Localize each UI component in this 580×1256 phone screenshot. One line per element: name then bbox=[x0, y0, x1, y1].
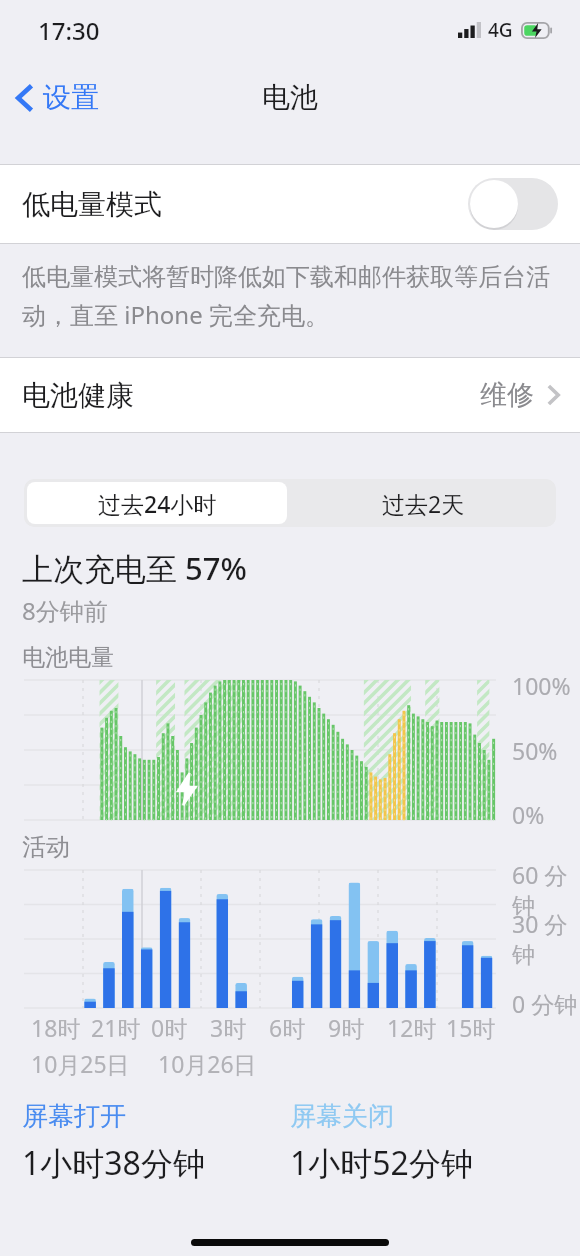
staticText: 上次充电至 57% bbox=[22, 547, 247, 589]
staticText: 10月25日 bbox=[31, 1048, 130, 1079]
staticText: 15时 bbox=[446, 1012, 496, 1043]
staticText: 0时 bbox=[151, 1012, 188, 1043]
button[interactable]: 过去2天 bbox=[290, 479, 556, 527]
staticText: 电池 bbox=[262, 80, 318, 115]
staticText: 30 分钟 bbox=[512, 908, 580, 970]
staticText: 1小时52分钟 bbox=[290, 1141, 473, 1185]
staticText: 过去2天 bbox=[382, 488, 465, 519]
staticText: 10月26日 bbox=[158, 1048, 257, 1079]
button[interactable]: 设置 bbox=[0, 72, 113, 123]
staticText: 过去24小时 bbox=[98, 488, 217, 519]
staticText: 屏幕打开 bbox=[22, 1100, 126, 1133]
staticText: 17:30 bbox=[38, 14, 100, 47]
staticText: 低电量模式 bbox=[22, 187, 162, 222]
staticText: 设置 bbox=[43, 80, 99, 115]
staticText: 0 分钟 bbox=[512, 988, 578, 1019]
staticText: 屏幕关闭 bbox=[290, 1100, 394, 1133]
staticText: 动，直至 iPhone 完全充电。 bbox=[22, 298, 329, 331]
staticText: 60 分钟 bbox=[512, 859, 580, 921]
staticText: 维修 bbox=[480, 378, 534, 412]
staticText: 0% bbox=[512, 799, 545, 830]
button[interactable]: 低电量模式开关 bbox=[468, 178, 558, 230]
staticText: 6时 bbox=[269, 1012, 306, 1043]
staticText: 3时 bbox=[210, 1012, 247, 1043]
staticText: 8分钟前 bbox=[22, 594, 108, 627]
button[interactable]: 低电量模式 bbox=[0, 165, 580, 243]
staticText: 1小时38分钟 bbox=[22, 1141, 205, 1185]
staticText: 100% bbox=[512, 670, 571, 701]
staticText: 活动 bbox=[22, 832, 70, 862]
staticText: 12时 bbox=[387, 1012, 437, 1043]
staticText: 21时 bbox=[91, 1012, 141, 1043]
staticText: 4G bbox=[488, 17, 513, 43]
button[interactable]: 过去24小时 bbox=[27, 482, 287, 524]
staticText: 电池电量 bbox=[22, 643, 114, 672]
staticText: 50% bbox=[512, 735, 558, 766]
staticText: 18时 bbox=[31, 1012, 81, 1043]
staticText: 低电量模式将暂时降低如下载和邮件获取等后台活 bbox=[22, 262, 550, 292]
staticText: 电池健康 bbox=[22, 378, 134, 413]
button[interactable]: 电池健康 bbox=[0, 358, 580, 432]
staticText: 9时 bbox=[328, 1012, 365, 1043]
